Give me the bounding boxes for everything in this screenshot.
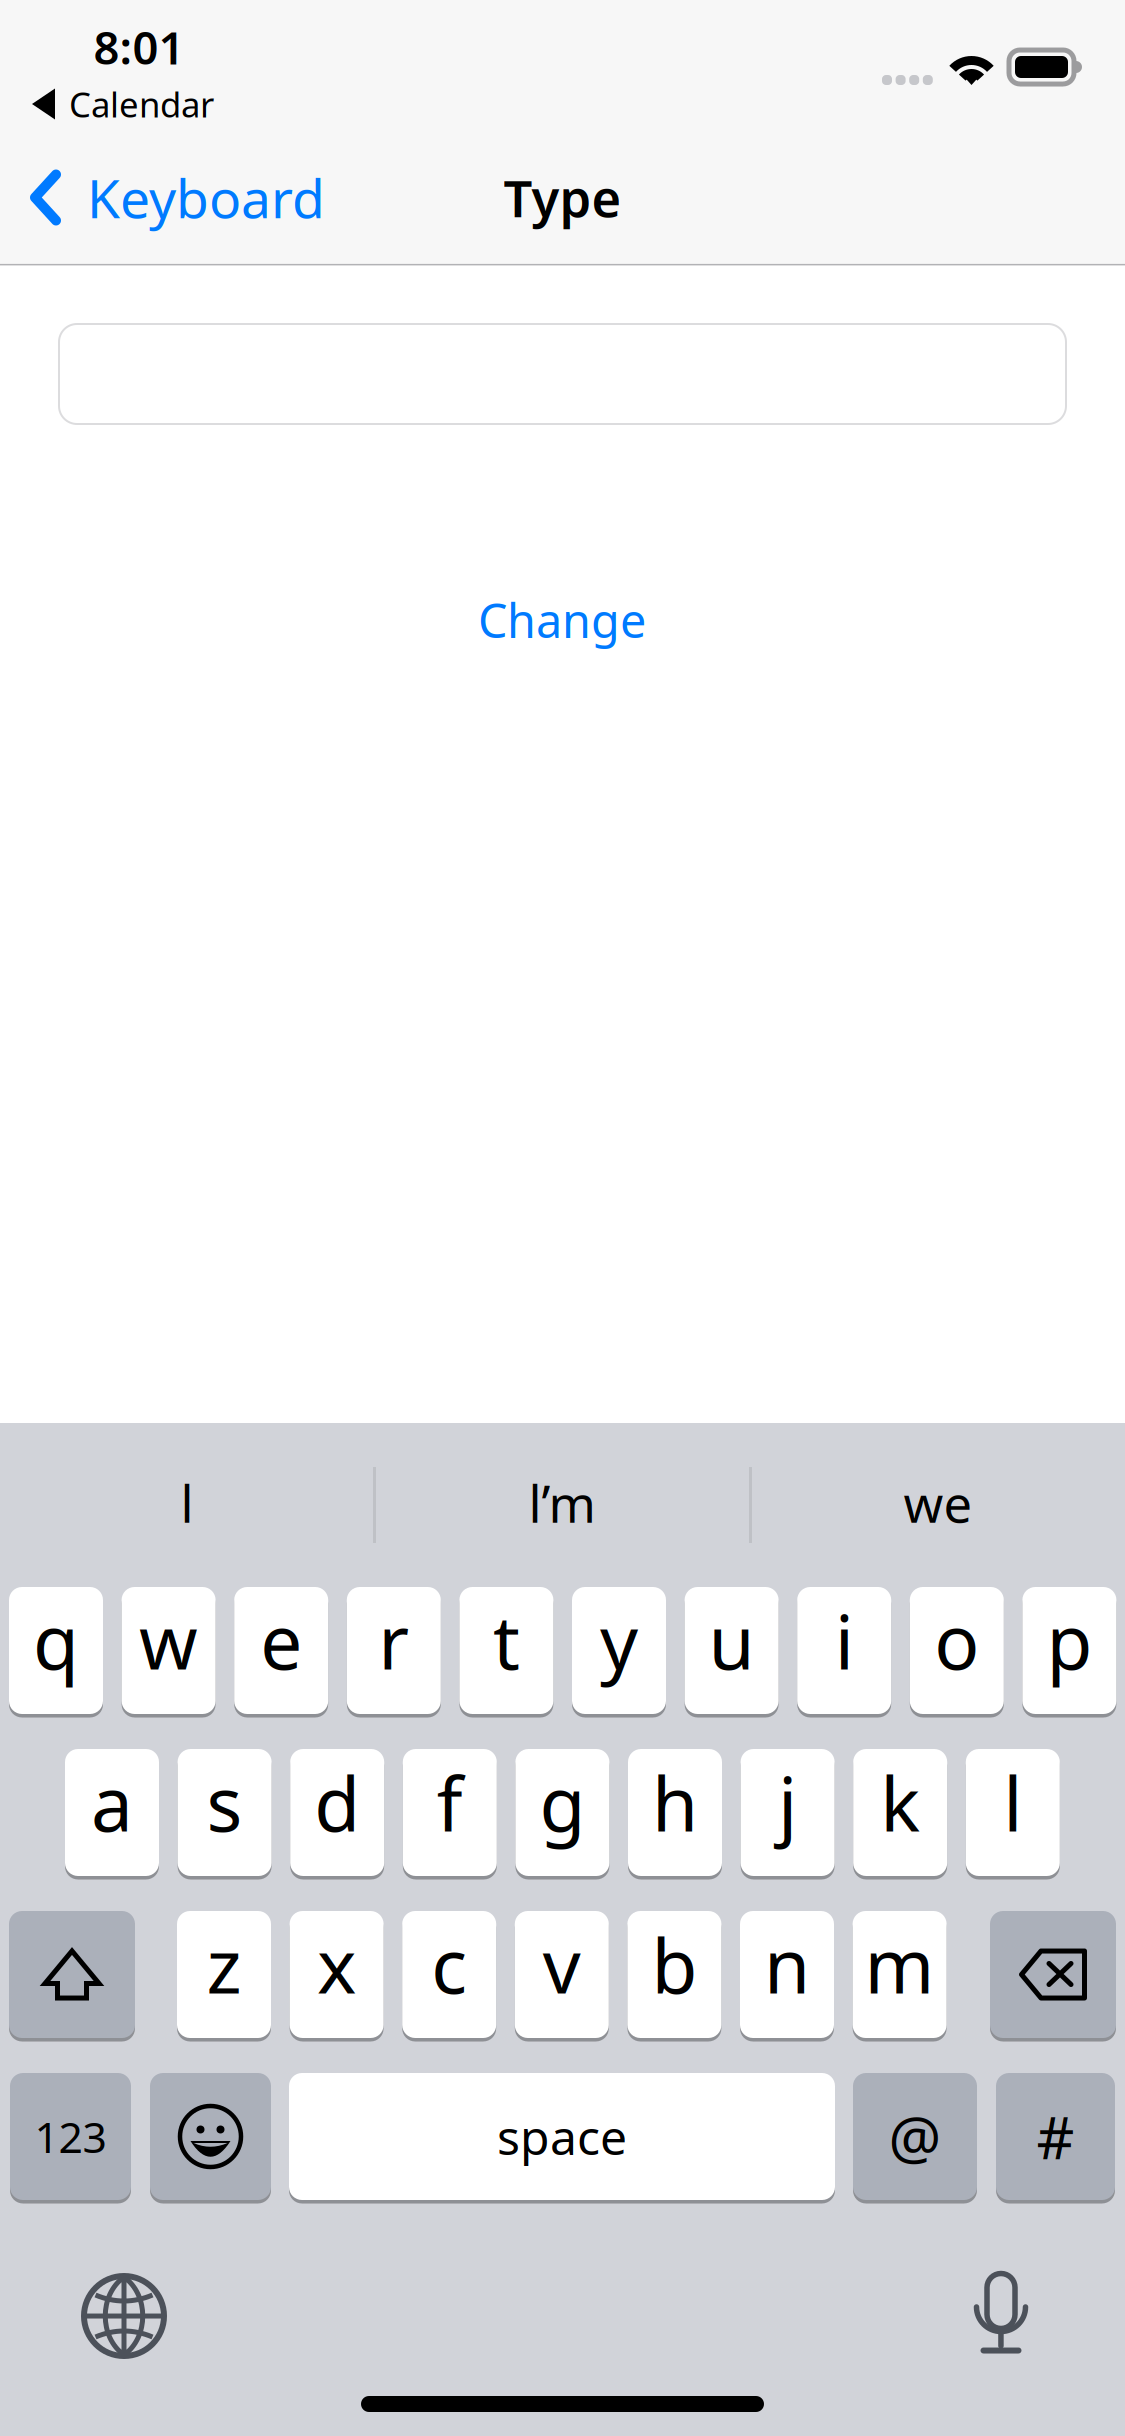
staticText: o bbox=[934, 1591, 979, 1690]
button[interactable]: j bbox=[741, 1749, 835, 1876]
staticText: j bbox=[778, 1753, 797, 1852]
staticText: 8:01 bbox=[93, 17, 184, 77]
button[interactable]: g bbox=[515, 1749, 609, 1876]
staticText: k bbox=[880, 1753, 920, 1852]
staticText: t bbox=[493, 1591, 520, 1690]
button[interactable]: u bbox=[685, 1587, 779, 1714]
button[interactable]: i bbox=[797, 1587, 891, 1714]
button[interactable]: l bbox=[0, 1423, 370, 1573]
staticText: # bbox=[1036, 2097, 1074, 2175]
staticText: Calendar bbox=[69, 81, 214, 127]
staticText: v bbox=[543, 1915, 581, 2014]
staticText: f bbox=[437, 1753, 463, 1852]
staticText: z bbox=[206, 1915, 241, 2014]
staticText: d bbox=[314, 1753, 360, 1852]
button[interactable]: h bbox=[628, 1749, 722, 1876]
button[interactable]: l bbox=[966, 1749, 1060, 1876]
button[interactable]: f bbox=[403, 1749, 497, 1876]
staticText: g bbox=[539, 1753, 585, 1852]
staticText: r bbox=[378, 1591, 409, 1690]
staticText: u bbox=[709, 1591, 755, 1690]
button[interactable]: Keyboard bbox=[0, 0, 349, 131]
staticText: b bbox=[651, 1915, 697, 2014]
staticText: m bbox=[865, 1915, 935, 2014]
staticText: i bbox=[835, 1591, 854, 1690]
button[interactable]: v bbox=[515, 1911, 609, 2038]
staticText: w bbox=[139, 1591, 198, 1690]
button[interactable]: we bbox=[0, 1423, 370, 1573]
staticText: x bbox=[317, 1915, 356, 2014]
button[interactable]: e bbox=[234, 1587, 328, 1714]
staticText: l’m bbox=[528, 1469, 595, 1537]
staticText: we bbox=[903, 1469, 972, 1537]
button[interactable]: Change bbox=[0, 0, 300, 70]
staticText: p bbox=[1046, 1591, 1092, 1690]
button[interactable]: Text field bbox=[0, 0, 1007, 100]
staticText: n bbox=[764, 1915, 810, 2014]
button[interactable]: k bbox=[853, 1749, 947, 1876]
staticText: @ bbox=[888, 2097, 941, 2175]
button[interactable]: l’m bbox=[0, 1423, 370, 1573]
button[interactable]: q bbox=[9, 1587, 103, 1714]
button[interactable]: y bbox=[572, 1587, 666, 1714]
button[interactable]: a bbox=[65, 1749, 159, 1876]
button[interactable]: w bbox=[122, 1587, 216, 1714]
staticText: Change bbox=[478, 589, 646, 651]
button[interactable]: t bbox=[459, 1587, 553, 1714]
button[interactable]: x bbox=[290, 1911, 384, 2038]
button[interactable]: n bbox=[740, 1911, 834, 2038]
staticText: a bbox=[91, 1753, 133, 1852]
button[interactable]: b bbox=[627, 1911, 721, 2038]
staticText: space bbox=[497, 2105, 627, 2168]
staticText: y bbox=[600, 1591, 638, 1690]
staticText: c bbox=[431, 1915, 467, 2014]
button[interactable]: r bbox=[347, 1587, 441, 1714]
staticText: Type bbox=[503, 164, 621, 231]
button[interactable]: o bbox=[910, 1587, 1004, 1714]
button[interactable]: m bbox=[853, 1911, 947, 2038]
button[interactable]: z bbox=[177, 1911, 271, 2038]
staticText: s bbox=[207, 1753, 243, 1852]
staticText: h bbox=[652, 1753, 698, 1852]
button[interactable]: d bbox=[290, 1749, 384, 1876]
button[interactable]: p bbox=[1022, 1587, 1116, 1714]
staticText: e bbox=[260, 1591, 302, 1690]
staticText: Keyboard bbox=[87, 162, 325, 233]
button[interactable]: Calendar bbox=[0, 0, 182, 44]
staticText: l bbox=[180, 1469, 193, 1537]
staticText: 123 bbox=[34, 2108, 106, 2165]
button[interactable]: space bbox=[0, 1423, 546, 1550]
button[interactable]: c bbox=[402, 1911, 496, 2038]
staticText: l bbox=[1003, 1753, 1022, 1852]
staticText: q bbox=[33, 1591, 79, 1690]
button[interactable]: s bbox=[178, 1749, 272, 1876]
